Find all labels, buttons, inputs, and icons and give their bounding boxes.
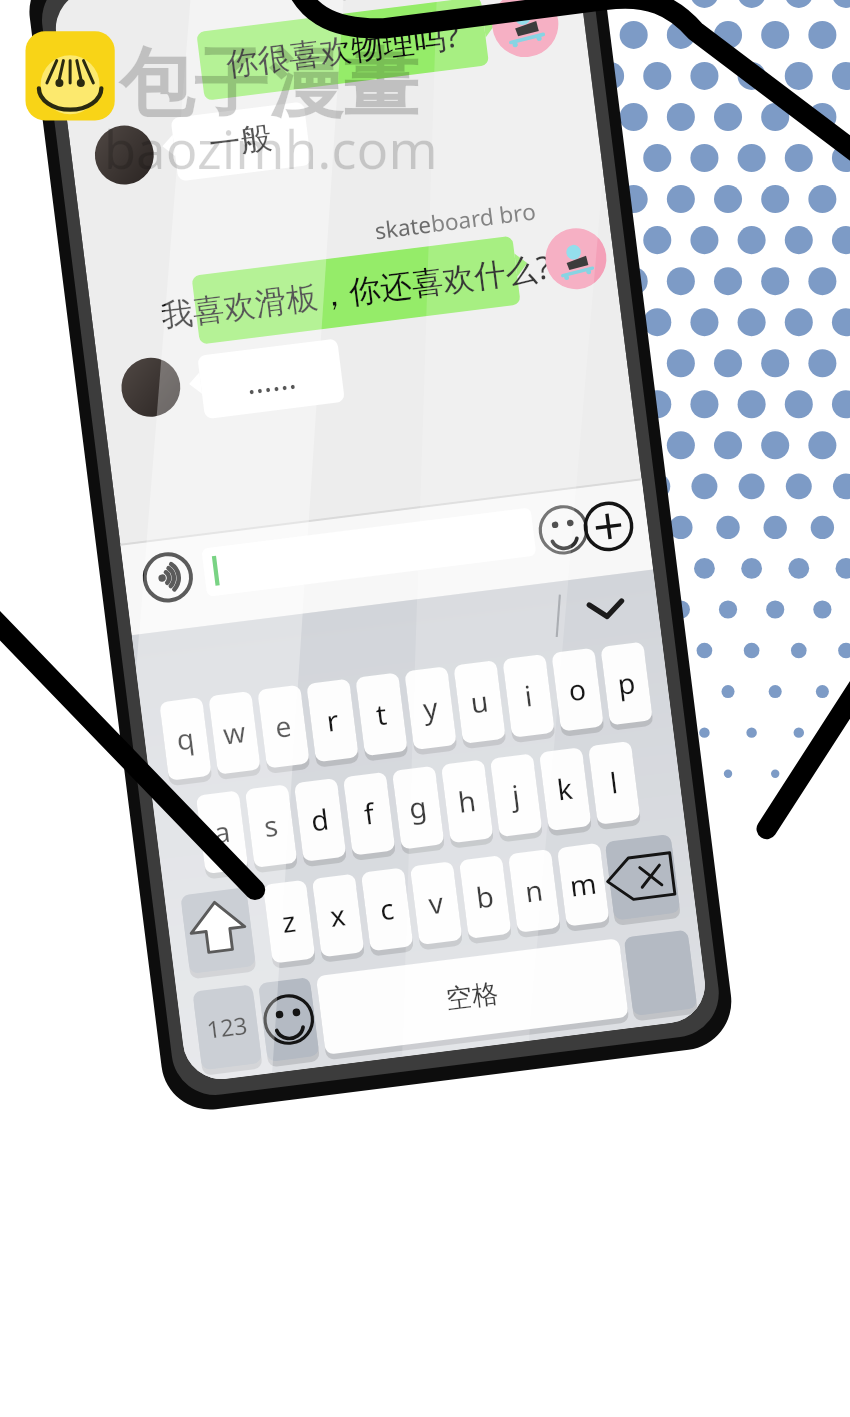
button[interactable]: Chat conversation shown on a tilted phon…	[0, 0, 850, 1417]
